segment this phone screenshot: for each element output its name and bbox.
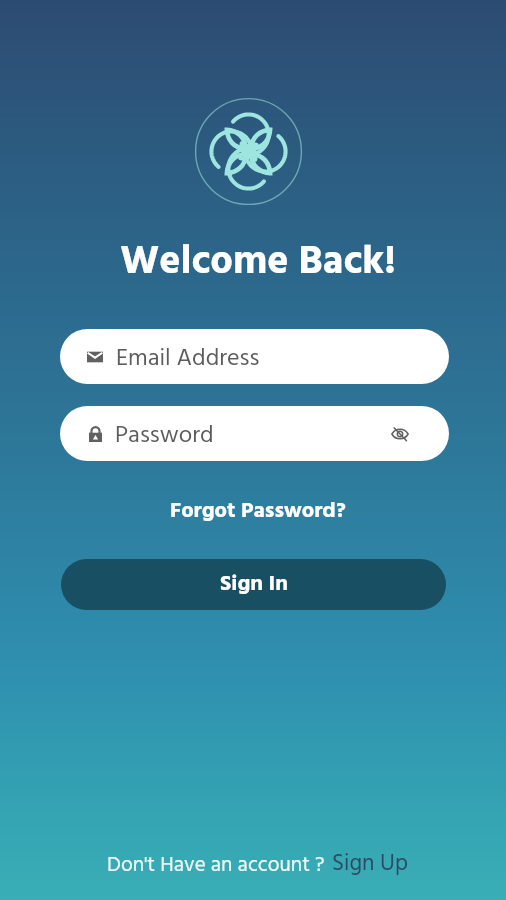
button[interactable]: Sign Up <box>331 846 409 883</box>
button[interactable]: Email Address <box>60 329 449 384</box>
staticText: Don't Have an account ? <box>107 849 325 883</box>
button[interactable]: Show password <box>387 421 413 447</box>
button[interactable]: Forgot Password? <box>164 491 352 532</box>
button[interactable]: Sign In <box>61 559 446 610</box>
staticText: Sign In <box>220 567 288 602</box>
staticText: Password <box>115 417 214 455</box>
button[interactable]: Password <box>60 406 449 461</box>
staticText: Welcome Back! <box>5 231 506 295</box>
staticText: Email Address <box>116 340 260 378</box>
